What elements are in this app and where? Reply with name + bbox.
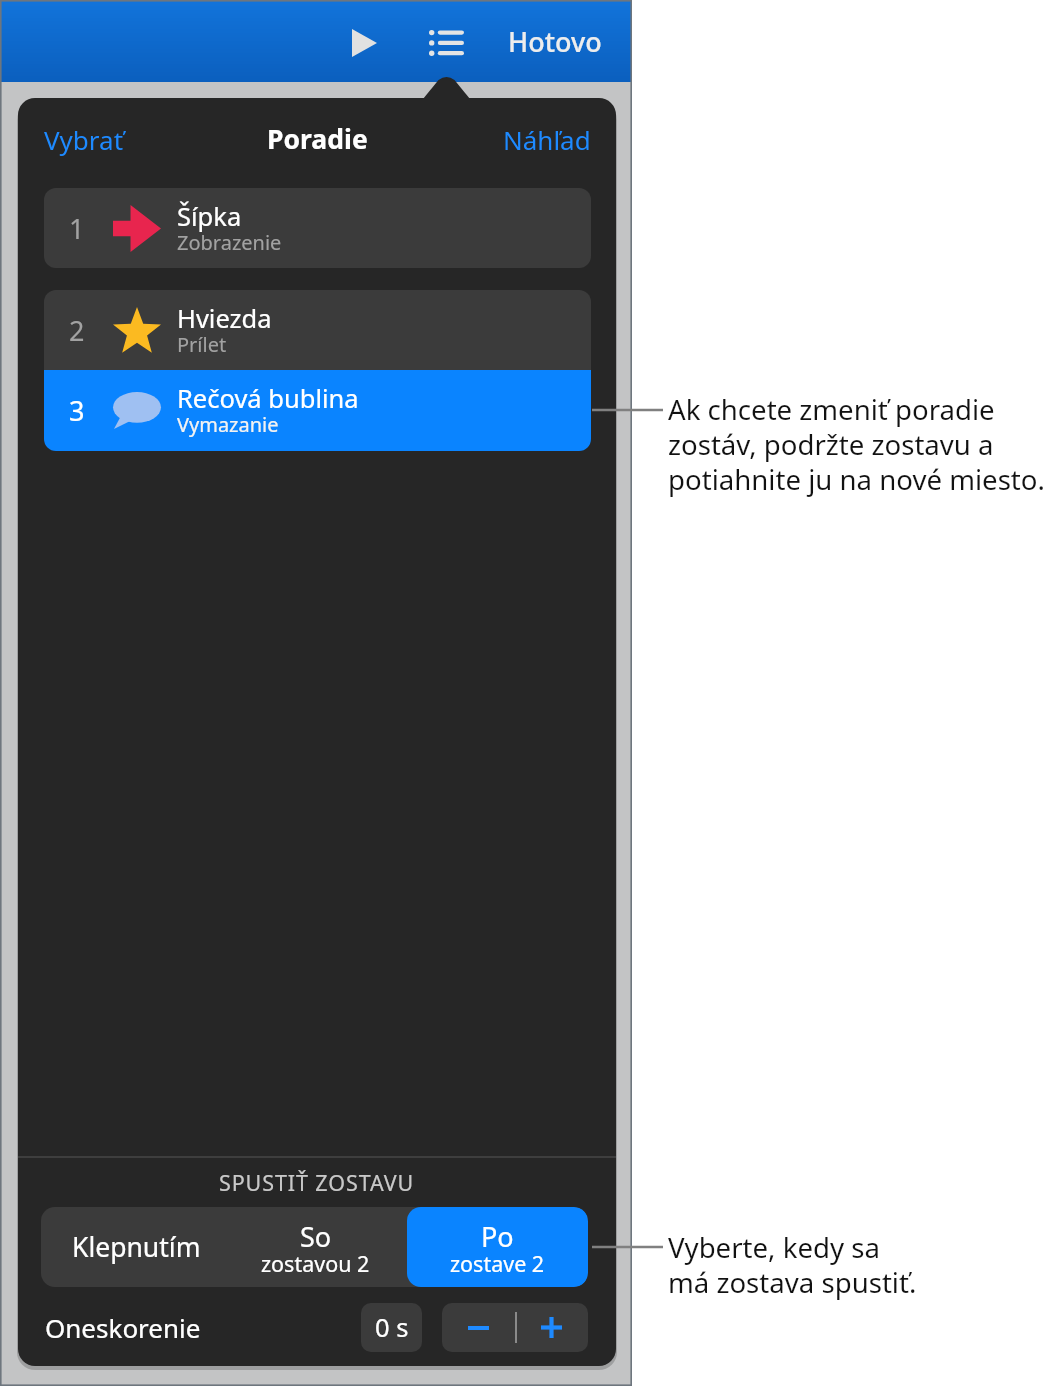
staticText: Zobrazenie [177,229,282,256]
staticText: Poradie [267,121,368,157]
staticText: 3 [69,392,85,429]
staticText: zostavou 2 [261,1249,370,1278]
staticText: Šípka [177,199,242,234]
button[interactable]: Build order [415,12,477,74]
button[interactable]: Klepnutím [41,1207,224,1287]
button[interactable]: 0 s [361,1303,422,1352]
staticText: Oneskorenie [45,1310,201,1345]
button[interactable]: 3 [44,370,591,451]
staticText: Vymazanie [177,411,279,438]
staticText: So [300,1218,332,1255]
staticText: Vybrať [44,122,124,157]
button[interactable]: Hotovo [496,12,614,70]
button[interactable]: Increase delay [515,1303,588,1352]
staticText: 1 [69,210,85,247]
staticText: Prílet [177,331,227,358]
staticText: Ak chcete zmeniť poradie zostáv, podržte… [668,390,1045,498]
staticText: Po [481,1218,514,1255]
button[interactable]: 1 [44,188,591,268]
button[interactable]: Decrease delay [442,1303,515,1352]
button[interactable]: 2 [44,290,591,370]
staticText: Rečová bublina [177,381,359,416]
staticText: 0 s [375,1310,409,1345]
button[interactable]: So [224,1207,407,1287]
button[interactable]: Play slideshow [333,12,395,74]
staticText: SPUSTIŤ ZOSTAVU [219,1168,415,1197]
staticText: Vyberte, kedy sa má zostava spustiť. [668,1228,917,1301]
button[interactable]: Po [407,1207,588,1287]
staticText: Klepnutím [72,1229,201,1265]
staticText: zostave 2 [450,1249,545,1278]
button[interactable]: Náhľad [482,106,612,172]
staticText: 2 [69,312,85,349]
button[interactable]: Vybrať [19,106,149,172]
staticText: Hotovo [508,23,602,60]
staticText: Hviezda [177,301,272,336]
staticText: Náhľad [503,122,591,157]
